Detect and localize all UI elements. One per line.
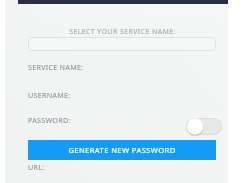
staticText: SELECT YOUR SERVICE NAME: — [69, 27, 176, 37]
button[interactable]: GENERATE NEW PASSWORD — [28, 140, 216, 160]
staticText: PASSWORD: — [28, 115, 71, 125]
staticText: USERNAME: — [28, 90, 71, 100]
staticText: URL: — [28, 162, 45, 172]
staticText: GENERATE NEW PASSWORD — [68, 145, 176, 155]
button[interactable] — [28, 37, 216, 51]
staticText: SERVICE NAME: — [28, 62, 84, 72]
button[interactable]: Toggle password visibility — [186, 118, 222, 135]
